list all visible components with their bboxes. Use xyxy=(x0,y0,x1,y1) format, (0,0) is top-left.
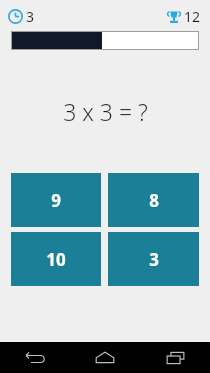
button[interactable]: Back xyxy=(0,342,70,373)
staticText: 10 xyxy=(46,248,66,271)
other: Score xyxy=(167,10,181,24)
staticText: 12 xyxy=(184,7,201,26)
staticText: 3 xyxy=(149,248,159,271)
staticText: 9 xyxy=(51,189,61,212)
button[interactable]: 10 xyxy=(11,232,101,286)
button[interactable]: 3 xyxy=(108,232,199,286)
button[interactable]: Recent apps xyxy=(140,342,210,373)
staticText: 3 xyxy=(26,7,35,26)
other: Time remaining xyxy=(8,9,23,24)
button[interactable]: 9 xyxy=(11,173,101,227)
button[interactable]: 8 xyxy=(108,173,199,227)
staticText: 3 x 3 = ? xyxy=(63,96,148,127)
staticText: 8 xyxy=(149,189,159,212)
button[interactable]: Home xyxy=(70,342,140,373)
